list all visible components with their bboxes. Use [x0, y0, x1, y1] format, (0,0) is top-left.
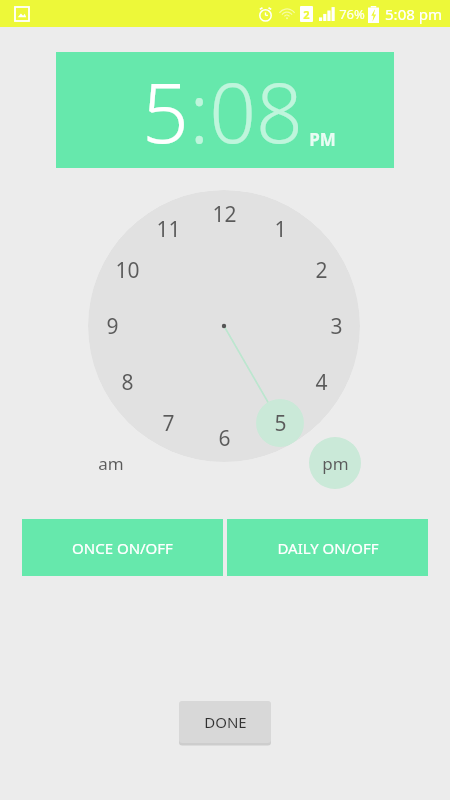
staticText: 1 [274, 215, 287, 243]
button[interactable]: DONE [179, 701, 271, 743]
button[interactable]: am [86, 438, 136, 488]
staticText: 7 [162, 409, 175, 437]
button[interactable]: 5 [56, 52, 394, 168]
button[interactable]: DAILY ON/OFF [227, 519, 428, 576]
staticText: 4 [315, 368, 328, 396]
staticText: :08 [189, 55, 303, 167]
button[interactable]: Clock dial, select hour [88, 190, 360, 462]
staticText: 3 [330, 312, 343, 340]
staticText: DONE [204, 712, 247, 732]
button[interactable]: pm [309, 437, 361, 489]
staticText: 5 [142, 55, 189, 167]
staticText: ONCE ON/OFF [72, 538, 173, 558]
staticText: 8 [121, 368, 134, 396]
staticText: 6 [218, 424, 231, 452]
staticText: 11 [156, 215, 181, 243]
staticText: pm [322, 452, 349, 475]
staticText: 9 [106, 312, 119, 340]
staticText: am [98, 452, 124, 475]
staticText: DAILY ON/OFF [277, 538, 379, 558]
staticText: 5 [274, 409, 287, 437]
staticText: 76% [339, 5, 365, 23]
staticText: PM [309, 128, 336, 151]
staticText: 2 [303, 7, 310, 22]
staticText: 12 [212, 200, 237, 228]
staticText: 10 [115, 256, 140, 284]
staticText: 5:08 pm [385, 4, 442, 24]
staticText: 2 [315, 256, 328, 284]
button[interactable]: ONCE ON/OFF [22, 519, 223, 576]
